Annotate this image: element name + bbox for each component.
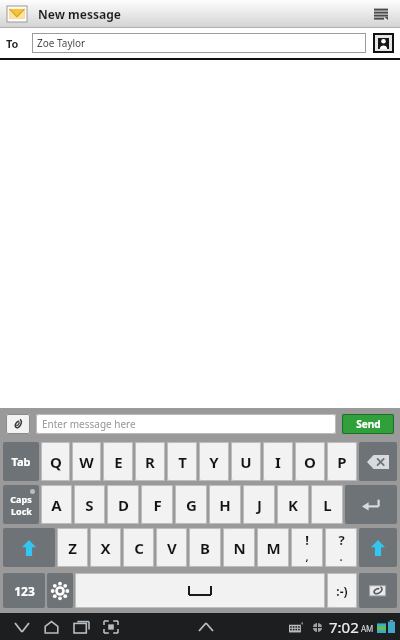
staticText: 123 — [14, 583, 35, 599]
button[interactable]: X — [90, 528, 121, 567]
button[interactable]: Send — [342, 414, 394, 434]
button[interactable]: N — [223, 528, 255, 567]
button[interactable]: ? — [325, 528, 357, 567]
button[interactable]: Y — [199, 442, 229, 481]
staticText: V — [167, 538, 177, 558]
button[interactable]: Shift — [359, 528, 397, 567]
button[interactable]: :-) — [327, 573, 357, 608]
button[interactable]: Enter message here — [36, 414, 336, 434]
button[interactable]: C — [123, 528, 154, 567]
staticText: Enter message here — [42, 417, 136, 431]
button[interactable]: T — [167, 442, 197, 481]
staticText: S — [85, 495, 94, 515]
staticText: F — [153, 495, 162, 515]
button[interactable]: D — [107, 485, 139, 524]
staticText: Caps — [10, 493, 32, 505]
staticText: O — [304, 452, 316, 472]
staticText: R — [145, 452, 155, 472]
staticText: , — [305, 549, 309, 564]
staticText: To — [6, 36, 32, 51]
button[interactable] — [345, 485, 397, 524]
staticText: Q — [50, 452, 62, 472]
staticText: 7:02 — [329, 617, 359, 637]
button[interactable]: L — [311, 485, 343, 524]
staticText: Lock — [11, 505, 32, 517]
button[interactable]: Keyboard — [287, 615, 305, 639]
button[interactable]: 123 — [3, 573, 45, 608]
staticText: Y — [209, 452, 219, 472]
button[interactable]: G — [175, 485, 207, 524]
button[interactable]: Recents — [66, 615, 96, 639]
button[interactable]: P — [327, 442, 357, 481]
staticText: U — [240, 452, 252, 472]
staticText: Tab — [11, 454, 31, 469]
button[interactable]: ! — [291, 528, 323, 567]
button[interactable]: A — [41, 485, 72, 524]
staticText: Send — [356, 417, 381, 431]
staticText: N — [233, 538, 246, 558]
staticText: D — [118, 495, 129, 515]
button[interactable] — [359, 442, 397, 481]
button[interactable]: F — [141, 485, 173, 524]
button[interactable]: R — [135, 442, 165, 481]
staticText: H — [219, 495, 231, 515]
staticText: P — [337, 452, 347, 472]
staticText: X — [100, 538, 111, 558]
button[interactable]: J — [243, 485, 275, 524]
button[interactable]: Expand — [192, 615, 220, 639]
staticText: ! — [305, 531, 309, 549]
button[interactable]: U — [231, 442, 261, 481]
button[interactable]: Shift — [3, 528, 55, 567]
button[interactable]: Q — [41, 442, 70, 481]
staticText: Zoe Taylor — [37, 36, 86, 50]
button[interactable]: Space — [75, 573, 325, 608]
staticText: K — [288, 495, 298, 515]
staticText: :-) — [336, 583, 348, 599]
button[interactable]: M — [257, 528, 289, 567]
button[interactable]: Caps — [3, 485, 39, 524]
button[interactable]: K — [277, 485, 309, 524]
button[interactable]: Screenshot — [96, 615, 126, 639]
button[interactable]: App icon — [6, 3, 28, 25]
staticText: I — [275, 452, 281, 472]
button[interactable]: H — [209, 485, 241, 524]
button[interactable]: B — [189, 528, 221, 567]
button[interactable]: Tab — [3, 442, 39, 481]
staticText: G — [186, 495, 197, 515]
staticText: C — [134, 538, 144, 558]
staticText: Z — [68, 538, 77, 558]
button[interactable]: Choose contact — [373, 33, 394, 53]
button[interactable]: S — [74, 485, 105, 524]
staticText: B — [200, 538, 210, 558]
button[interactable]: W — [72, 442, 101, 481]
staticText: E — [114, 452, 123, 472]
button[interactable]: V — [156, 528, 187, 567]
button[interactable]: Zoe Taylor — [32, 33, 366, 53]
staticText: J — [257, 495, 262, 515]
button[interactable]: Z — [57, 528, 88, 567]
button[interactable]: Menu — [368, 1, 394, 27]
staticText: A — [51, 495, 62, 515]
button[interactable]: E — [103, 442, 133, 481]
button[interactable]: Home — [36, 615, 66, 639]
button[interactable]: Back — [8, 615, 36, 639]
staticText: L — [323, 495, 332, 515]
staticText: M — [266, 538, 281, 558]
button[interactable]: Attach — [6, 414, 30, 434]
staticText: W — [79, 452, 94, 472]
staticText: . — [339, 549, 343, 564]
staticText: T — [178, 452, 187, 472]
staticText: New message — [38, 6, 121, 22]
staticText: AM — [361, 623, 374, 634]
staticText: ? — [338, 531, 345, 549]
button[interactable]: Attach — [359, 573, 397, 608]
button[interactable]: O — [295, 442, 325, 481]
button[interactable]: I — [263, 442, 293, 481]
button[interactable]: Settings — [47, 573, 73, 608]
